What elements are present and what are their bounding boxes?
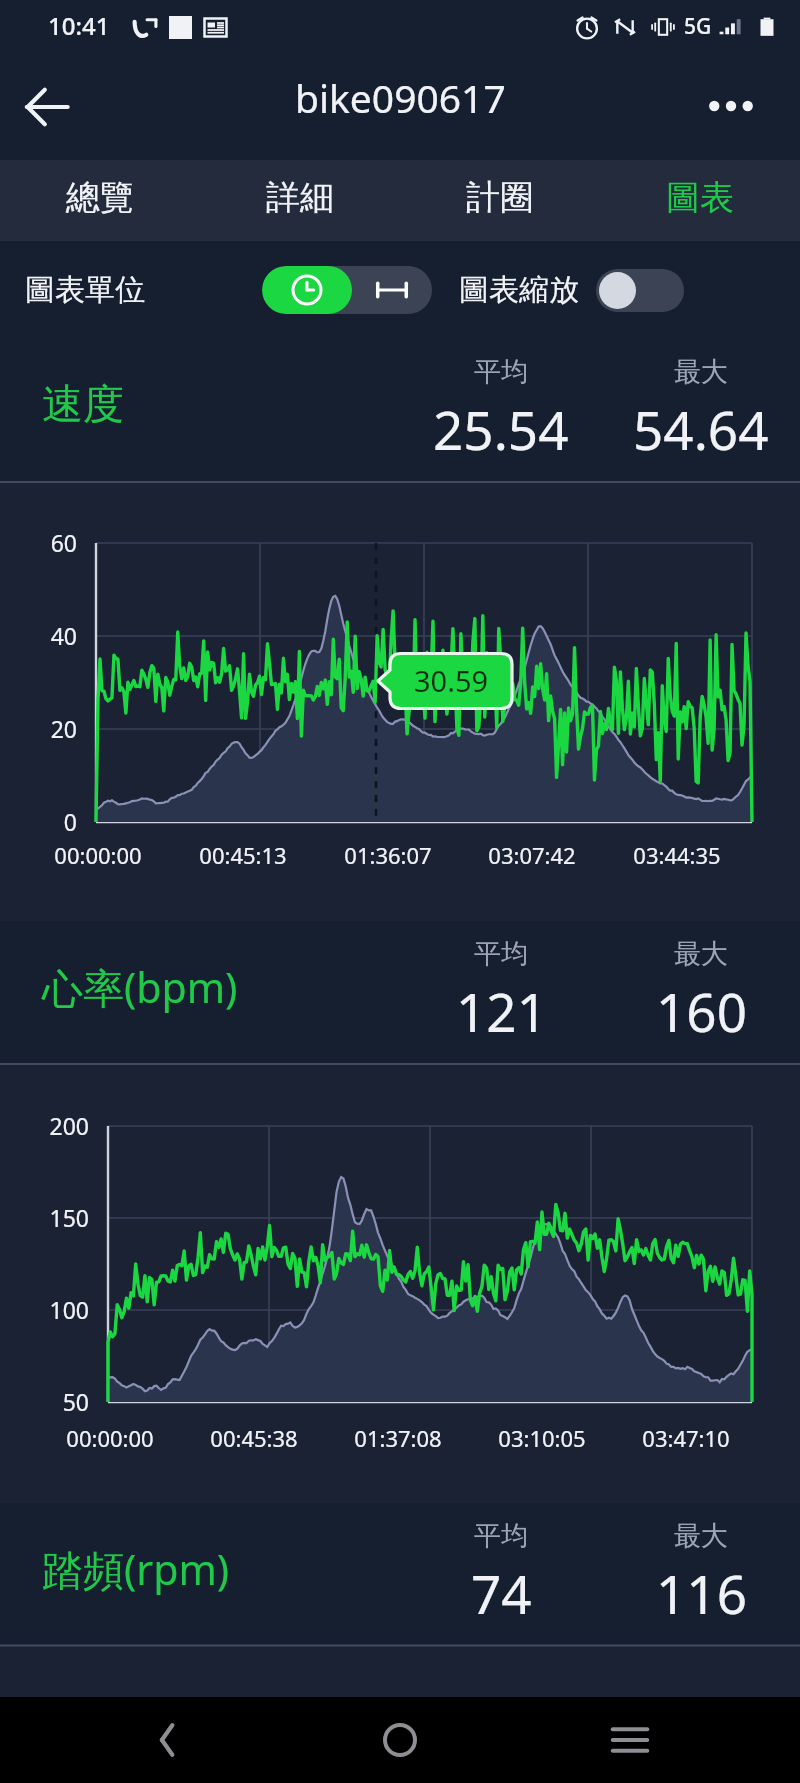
staticText: 116 xyxy=(656,1557,747,1629)
staticText: 最大 xyxy=(674,355,728,389)
staticText: 121 xyxy=(456,975,547,1047)
staticText: 平均 xyxy=(474,355,528,389)
staticText: 200 xyxy=(0,1110,89,1141)
staticText: 54.64 xyxy=(633,393,769,465)
staticText: 03:44:35 xyxy=(587,840,767,870)
button[interactable]: Chart zoom toggle, off xyxy=(596,269,684,312)
button[interactable]: 總覽 xyxy=(0,160,200,241)
staticText: 40 xyxy=(0,620,77,651)
staticText: bike090617 xyxy=(295,71,506,124)
staticText: 圖表單位 xyxy=(25,271,145,309)
staticText: 00:45:38 xyxy=(164,1423,344,1453)
staticText: 5G xyxy=(684,12,712,41)
staticText: 最大 xyxy=(674,1519,728,1553)
staticText: 圖表縮放 xyxy=(459,271,579,309)
staticText: 00:00:00 xyxy=(8,840,188,870)
staticText: 計圈 xyxy=(466,176,534,219)
staticText: 速度 xyxy=(42,379,124,431)
button[interactable]: Recent apps xyxy=(590,1700,670,1780)
staticText: 00:00:00 xyxy=(20,1423,200,1453)
staticText: 03:47:10 xyxy=(596,1423,776,1453)
staticText: 30.59 xyxy=(414,661,489,700)
staticText: 0 xyxy=(0,806,77,837)
staticText: 74 xyxy=(471,1557,532,1629)
staticText: 心率(bpm) xyxy=(42,959,238,1015)
button[interactable]: More options xyxy=(695,71,767,143)
staticText: 10:41 xyxy=(48,9,110,42)
button[interactable]: 圖表 xyxy=(600,160,800,241)
staticText: 25.54 xyxy=(433,393,569,465)
button[interactable]: Back xyxy=(8,68,86,146)
button[interactable]: Back xyxy=(128,1700,208,1780)
staticText: 160 xyxy=(656,975,747,1047)
button[interactable]: Time axis xyxy=(262,266,352,314)
staticText: 最大 xyxy=(674,937,728,971)
staticText: 平均 xyxy=(474,937,528,971)
button[interactable]: 計圈 xyxy=(400,160,600,241)
staticText: 圖表 xyxy=(666,176,734,219)
staticText: 01:36:07 xyxy=(298,840,478,870)
staticText: 總覽 xyxy=(66,176,134,219)
staticText: 20 xyxy=(0,713,77,744)
staticText: 00:45:13 xyxy=(153,840,333,870)
staticText: 平均 xyxy=(474,1519,528,1553)
staticText: 150 xyxy=(0,1202,89,1233)
staticText: 03:07:42 xyxy=(442,840,622,870)
staticText: 60 xyxy=(0,527,77,558)
staticText: 詳細 xyxy=(266,176,334,219)
button[interactable]: 詳細 xyxy=(200,160,400,241)
staticText: 50 xyxy=(0,1386,89,1417)
button[interactable]: Home xyxy=(360,1700,440,1780)
staticText: 踏頻(rpm) xyxy=(42,1541,230,1597)
staticText: 03:10:05 xyxy=(452,1423,632,1453)
staticText: 01:37:08 xyxy=(308,1423,488,1453)
button[interactable]: Distance axis xyxy=(352,266,432,314)
staticText: 100 xyxy=(0,1294,89,1325)
